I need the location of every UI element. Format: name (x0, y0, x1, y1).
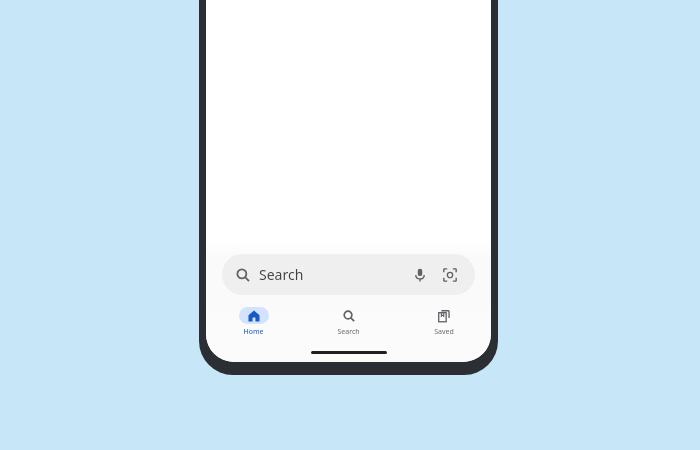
button[interactable]: Voice search (409, 264, 431, 286)
button[interactable]: Google Lens (439, 264, 461, 286)
button[interactable]: Search (301, 307, 396, 337)
button[interactable]: Search (222, 254, 475, 295)
staticText: Search (259, 265, 304, 284)
staticText: Search (337, 327, 360, 337)
staticText: Saved (434, 327, 454, 337)
staticText: Home (243, 327, 264, 337)
button[interactable]: Saved (396, 307, 491, 337)
button[interactable]: Home (206, 307, 301, 337)
